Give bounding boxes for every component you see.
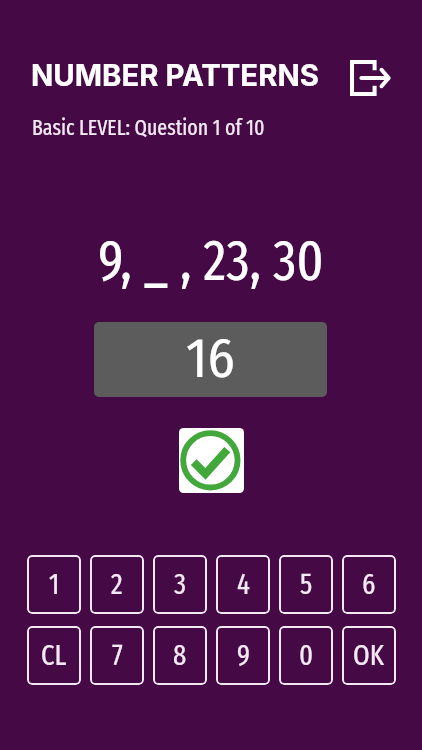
button[interactable]: OK bbox=[342, 626, 396, 685]
button[interactable]: Exit bbox=[344, 52, 396, 104]
staticText: NUMBER PATTERNS bbox=[31, 58, 319, 93]
staticText: 5 bbox=[300, 567, 313, 602]
staticText: OK bbox=[353, 638, 385, 673]
button[interactable]: 16 bbox=[94, 322, 327, 397]
staticText: 3 bbox=[174, 567, 186, 602]
button[interactable]: Submit answer bbox=[179, 428, 244, 493]
staticText: Basic LEVEL: Question 1 of 10 bbox=[32, 115, 265, 141]
button[interactable]: 8 bbox=[153, 626, 207, 685]
button[interactable]: 1 bbox=[27, 555, 81, 614]
staticText: 9, _ , 23, 30 bbox=[0, 227, 422, 295]
staticText: 9 bbox=[237, 638, 250, 673]
button[interactable]: 5 bbox=[279, 555, 333, 614]
staticText: 8 bbox=[173, 638, 187, 673]
button[interactable]: 7 bbox=[90, 626, 144, 685]
staticText: CL bbox=[41, 638, 67, 673]
button[interactable]: 6 bbox=[342, 555, 396, 614]
button[interactable]: 9 bbox=[216, 626, 270, 685]
staticText: 16 bbox=[186, 326, 235, 392]
button[interactable]: 2 bbox=[90, 555, 144, 614]
staticText: 1 bbox=[49, 567, 60, 602]
button[interactable]: CL bbox=[27, 626, 81, 685]
button[interactable]: 4 bbox=[216, 555, 270, 614]
staticText: 2 bbox=[111, 567, 123, 602]
staticText: 6 bbox=[362, 567, 376, 602]
staticText: 0 bbox=[299, 638, 314, 673]
staticText: 4 bbox=[237, 567, 250, 602]
button[interactable]: 0 bbox=[279, 626, 333, 685]
button[interactable]: 3 bbox=[153, 555, 207, 614]
staticText: 7 bbox=[112, 638, 123, 673]
